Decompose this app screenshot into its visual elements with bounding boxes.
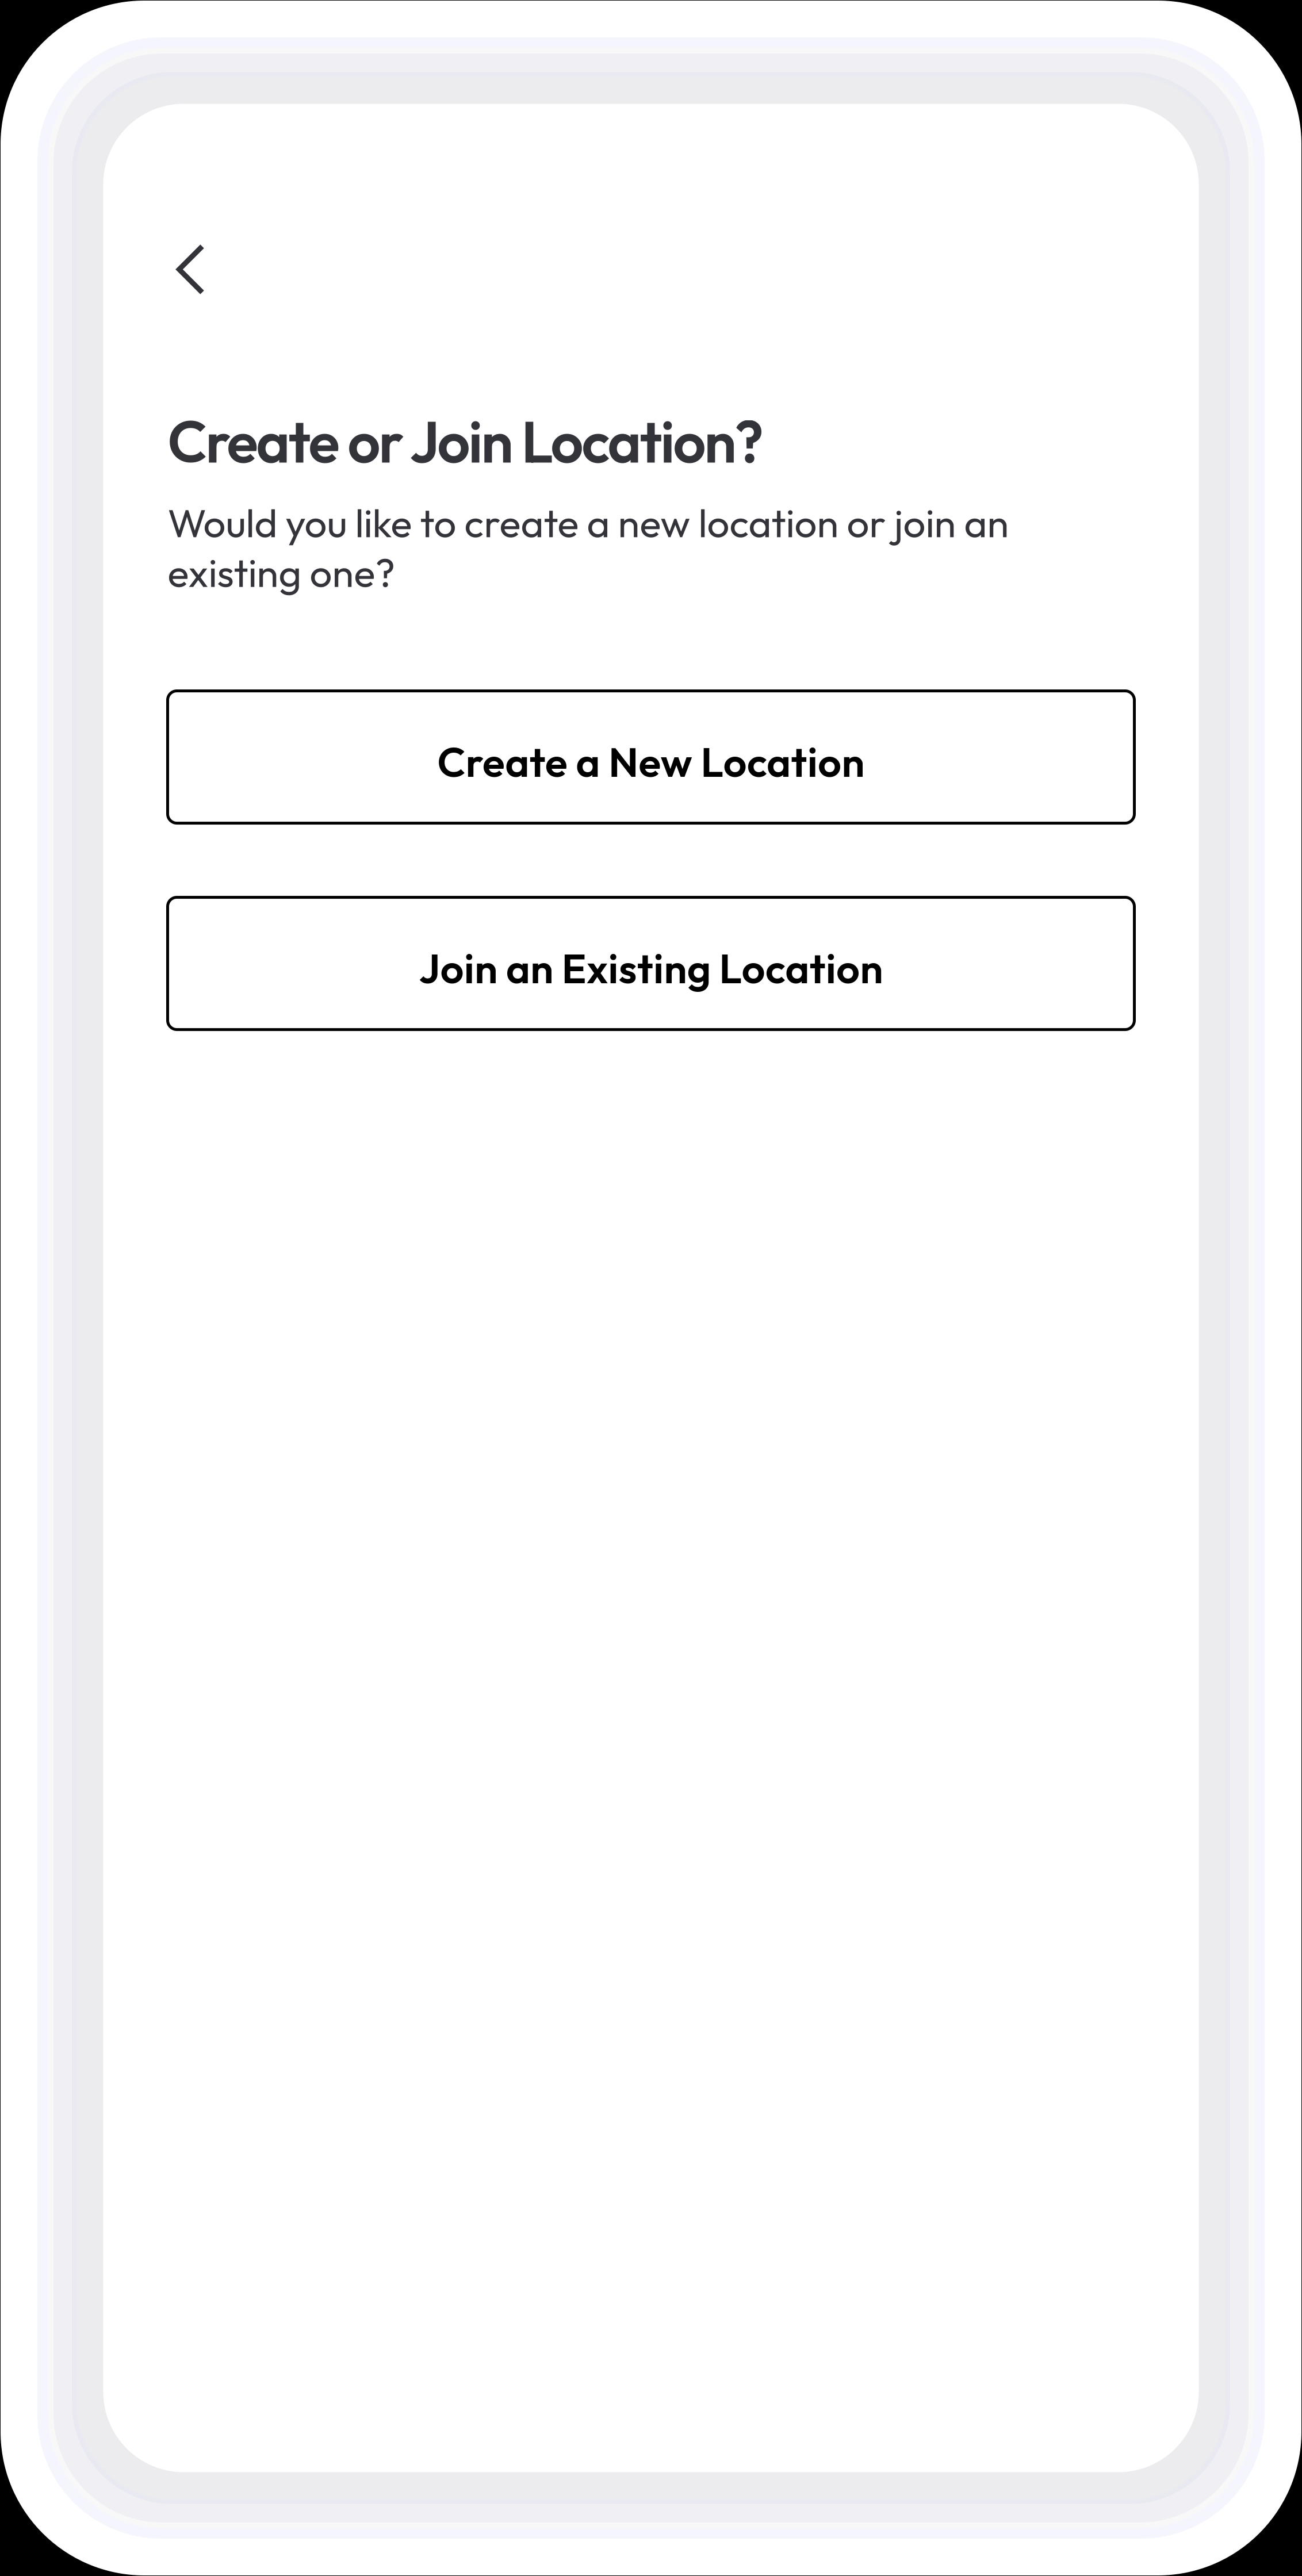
staticText: Create a New Location [437,736,865,787]
staticText: existing one? [168,547,395,597]
staticText: Would you like to create a new location … [168,498,1009,547]
staticText: Create or Join Location? [168,405,763,478]
button[interactable]: Join an Existing Location [168,897,1134,1030]
staticText: Join an Existing Location [419,942,883,994]
button[interactable]: Back [177,244,204,295]
button[interactable]: Create a New Location [168,691,1134,823]
